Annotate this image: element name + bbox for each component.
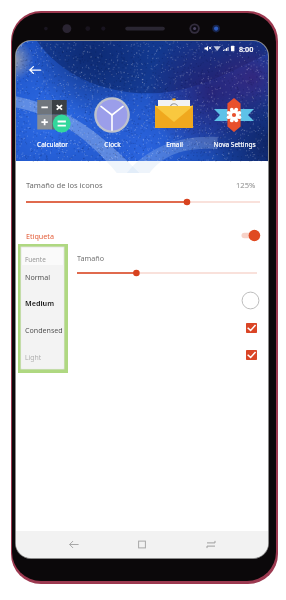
staticText: Etiqueta — [26, 231, 54, 241]
staticText: Condensed — [25, 325, 63, 335]
button[interactable]: Tamaño de los iconos — [20, 176, 264, 193]
staticText: Email — [166, 140, 183, 149]
staticText: Light — [25, 352, 42, 362]
button[interactable]: Checkbox — [246, 323, 257, 333]
button[interactable]: Slider — [77, 268, 257, 278]
staticText: Nova Settings — [213, 140, 256, 149]
staticText: Normal — [25, 272, 51, 282]
button[interactable]: Clock — [82, 97, 142, 149]
button[interactable]: Etiqueta — [20, 228, 264, 243]
button[interactable]: Home — [131, 531, 153, 558]
staticText: Medium — [25, 298, 55, 308]
button[interactable]: Light — [21, 348, 64, 365]
staticText: 8:00 — [239, 44, 254, 54]
button[interactable]: Email — [144, 97, 204, 149]
button[interactable]: Normal — [21, 268, 64, 285]
button[interactable]: Toggle label — [239, 229, 263, 242]
staticText: Clock — [104, 140, 121, 149]
staticText: Tamaño de los iconos — [26, 180, 103, 190]
button[interactable]: Condensed — [21, 321, 64, 338]
button[interactable]: Slider — [26, 197, 260, 207]
button[interactable]: Recents — [200, 531, 222, 558]
staticText: Fuente — [25, 255, 46, 264]
button[interactable]: Back — [24, 59, 46, 81]
staticText: 125% — [236, 180, 256, 190]
button[interactable]: Medium — [21, 294, 64, 311]
button[interactable]: Back — [63, 531, 85, 558]
button[interactable]: Nova Settings — [204, 97, 264, 149]
button[interactable]: Radio button — [241, 291, 260, 310]
button[interactable]: Fuente — [21, 251, 64, 268]
button[interactable]: Checkbox — [246, 350, 257, 360]
button[interactable]: Calculator — [22, 97, 82, 149]
staticText: Calculator — [37, 140, 68, 149]
staticText: Tamaño — [77, 253, 104, 263]
